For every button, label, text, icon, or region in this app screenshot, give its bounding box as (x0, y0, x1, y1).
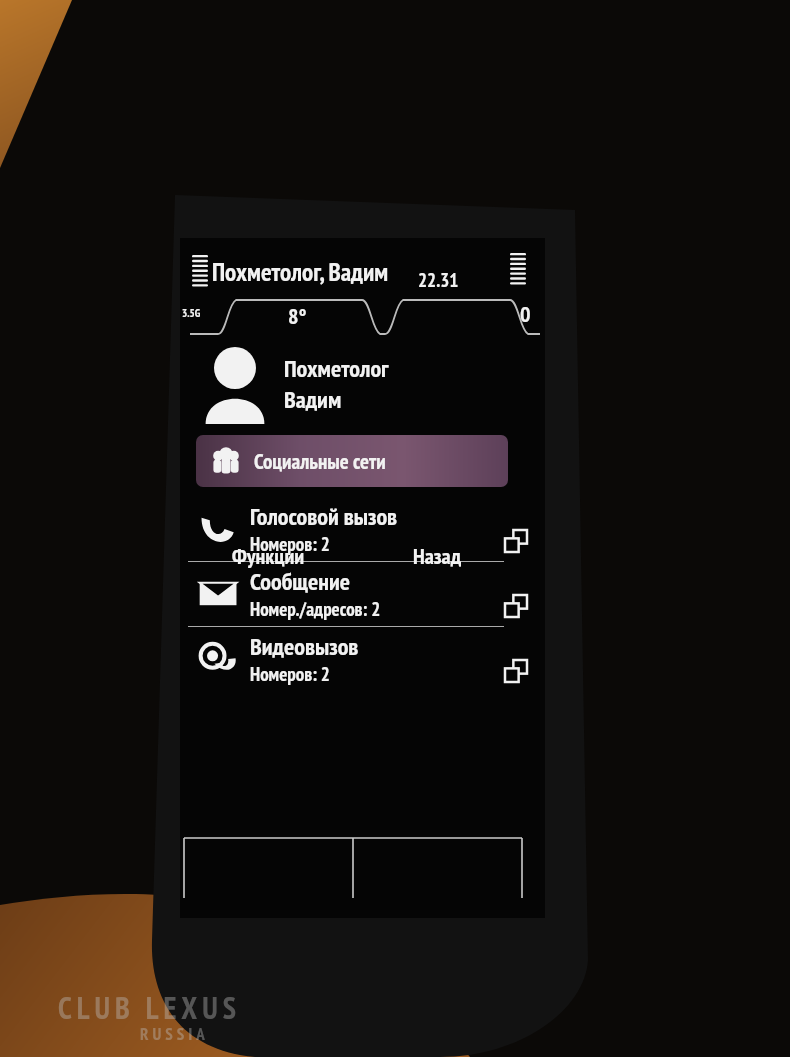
staticText: Похметолог (284, 353, 389, 384)
staticText: Голосовой вызов (250, 501, 398, 532)
button[interactable]: Социальные сети (196, 435, 508, 487)
staticText: 8° (288, 302, 307, 330)
staticText: RUSSIA (140, 1023, 209, 1045)
staticText: Похметолог, Вадим (212, 256, 389, 288)
button[interactable]: Сообщение (180, 562, 545, 626)
staticText: 22.31 (418, 268, 459, 293)
staticText: Назад (413, 542, 462, 570)
button[interactable]: Голосовой вызов (180, 497, 545, 561)
staticText: 3.5G (182, 306, 201, 320)
staticText: Вадим (284, 384, 342, 415)
staticText: Номеров: 2 (250, 532, 330, 557)
button[interactable]: Назад (353, 540, 522, 572)
staticText: Номеров: 2 (250, 662, 330, 687)
staticText: Сообщение (250, 566, 350, 597)
staticText: Видеовызов (250, 631, 359, 662)
button[interactable]: Функции (184, 540, 353, 572)
staticText: CLUB LEXUS (58, 988, 241, 1027)
staticText: 0 (520, 300, 531, 328)
button[interactable]: Видеовызов (180, 627, 545, 691)
staticText: Номер./адресов: 2 (250, 597, 381, 622)
staticText: Функции (232, 542, 305, 570)
staticText: Социальные сети (254, 448, 386, 475)
